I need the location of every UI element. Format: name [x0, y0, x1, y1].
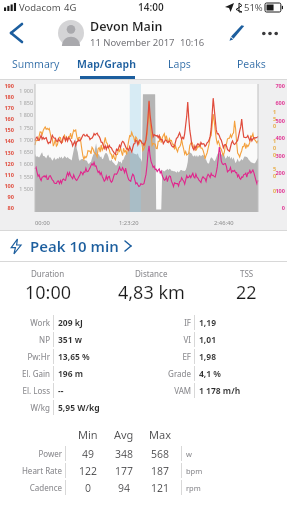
staticText: 110 — [0, 171, 14, 179]
staticText: W/kg — [30, 402, 50, 413]
staticText: 100 — [271, 187, 285, 195]
staticText: Min — [78, 427, 98, 442]
button[interactable]: Peaks — [215, 52, 287, 76]
button[interactable]: Back — [0, 14, 32, 52]
staticText: 4,1 % — [199, 368, 222, 380]
staticText: 1 550 — [16, 173, 33, 180]
staticText: Work — [30, 317, 50, 328]
staticText: 00:00 — [35, 219, 50, 227]
staticText: 1 900 — [16, 87, 33, 94]
staticText: 180 — [0, 93, 14, 101]
staticText: 1,98 — [199, 351, 217, 363]
staticText: 400 — [271, 134, 285, 142]
staticText: 1 178 m/h — [199, 385, 241, 397]
button[interactable]: More options — [253, 14, 287, 52]
staticText: 22 — [236, 280, 257, 305]
staticText: 5,95 W/kg — [58, 402, 100, 414]
staticText: 10:16 — [180, 36, 205, 49]
staticText: 130 — [0, 149, 14, 157]
staticText: 122 — [79, 464, 98, 478]
staticText: 177 — [115, 464, 134, 478]
staticText: NP — [39, 334, 50, 345]
staticText: Heart Rate — [21, 465, 62, 476]
staticText: 80 — [0, 204, 14, 212]
staticText: 2:46:40 — [214, 219, 234, 227]
staticText: 49 — [82, 447, 95, 461]
staticText: Cadence — [29, 482, 62, 493]
staticText: Summary — [12, 57, 60, 71]
staticText: Distance — [135, 268, 168, 279]
staticText: 1 750 — [16, 124, 33, 131]
button[interactable]: Summary — [0, 52, 71, 76]
staticText: 120 — [0, 160, 14, 168]
staticText: 1 850 — [16, 99, 33, 106]
staticText: El. Loss — [22, 385, 50, 396]
staticText: Duration — [31, 268, 65, 279]
staticText: 700 — [271, 82, 285, 90]
staticText: 200 — [271, 169, 285, 177]
staticText: w — [186, 449, 192, 459]
staticText: 90 — [0, 193, 14, 201]
staticText: 0 — [271, 204, 285, 212]
staticText: 94 — [118, 481, 131, 495]
staticText: 51% — [244, 1, 263, 14]
staticText: Max — [149, 427, 171, 442]
staticText: Laps — [168, 57, 191, 71]
staticText: 196 m — [58, 368, 84, 380]
staticText: 300 — [271, 152, 285, 160]
staticText: VI — [183, 334, 191, 345]
staticText: Map/Graph — [77, 57, 137, 71]
staticText: 348 — [115, 447, 134, 461]
staticText: bpm — [186, 466, 203, 476]
staticText: Grade — [168, 368, 191, 379]
button[interactable]: Edit — [221, 14, 253, 52]
staticText: 1 600 — [16, 160, 33, 167]
staticText: Vodacom — [19, 1, 61, 14]
staticText: 568 — [151, 447, 170, 461]
staticText: 11 November 2017 — [90, 36, 175, 49]
staticText: 209 kJ — [58, 317, 83, 329]
staticText: rpm — [186, 483, 201, 493]
staticText: 1:23:20 — [119, 219, 139, 227]
staticText: 1 650 — [16, 148, 33, 155]
staticText: 351 w — [58, 334, 83, 346]
staticText: 4G — [64, 1, 77, 14]
staticText: Peak 10 min — [30, 236, 119, 256]
staticText: 1,19 — [199, 317, 217, 329]
staticText: 170 — [0, 104, 14, 112]
staticText: 1 700 — [16, 136, 33, 143]
staticText: Devon Main — [90, 18, 163, 35]
staticText: TSS — [240, 268, 254, 279]
staticText: 1,01 — [199, 334, 217, 346]
staticText: Power — [38, 448, 62, 459]
staticText: 10:00 — [25, 280, 72, 305]
staticText: VAM — [174, 385, 191, 396]
staticText: 1 500 — [16, 185, 33, 192]
staticText: 0 — [85, 481, 92, 495]
staticText: 187 — [151, 464, 170, 478]
staticText: 190 — [0, 82, 14, 90]
staticText: 4,83 km — [118, 280, 185, 305]
staticText: 600 — [271, 99, 285, 107]
staticText: -- — [58, 385, 64, 397]
staticText: 1 800 — [16, 111, 33, 118]
staticText: El. Gain — [21, 368, 50, 379]
staticText: 500 — [271, 117, 285, 125]
staticText: Peaks — [237, 57, 266, 71]
staticText: 14:00 — [138, 0, 164, 14]
button[interactable]: Map/Graph — [71, 52, 143, 76]
staticText: Avg — [114, 427, 134, 442]
staticText: 100 — [0, 182, 14, 190]
staticText: 140 — [0, 137, 14, 145]
button[interactable]: Laps — [143, 52, 215, 76]
staticText: IF — [184, 317, 191, 328]
button[interactable]: Peak 10 min — [0, 231, 287, 261]
staticText: 160 — [0, 115, 14, 123]
staticText: Pw:Hr — [27, 351, 50, 362]
staticText: 13,65 % — [58, 351, 90, 363]
staticText: EF — [182, 351, 191, 362]
staticText: 121 — [151, 481, 170, 495]
staticText: 150 — [0, 126, 14, 134]
